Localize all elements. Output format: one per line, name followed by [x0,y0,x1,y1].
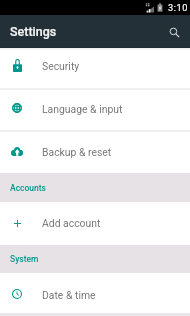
staticText: Add account [42,217,101,229]
button[interactable]: Language & input [0,89,190,130]
staticText: Date & time [42,289,96,301]
staticText: Security [42,60,80,72]
staticText: Settings [10,24,57,39]
button[interactable]: Add account [0,202,190,245]
staticText: Accounts [10,183,46,193]
staticText: Language & input [42,103,123,115]
button[interactable]: Date & time [0,273,190,314]
staticText: System [10,254,39,264]
button[interactable]: Backup & reset [0,132,190,174]
button[interactable]: Search [158,16,190,48]
button[interactable]: Security [0,47,190,88]
staticText: Backup & reset [42,146,112,158]
staticText: 3:10 [168,2,189,13]
